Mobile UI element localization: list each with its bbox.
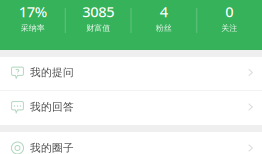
staticText: 我的圈子	[30, 141, 74, 154]
staticText: 0	[225, 2, 233, 21]
button[interactable]: 我的回答	[0, 91, 262, 125]
button[interactable]: 3085	[65, 0, 131, 50]
staticText: 17%	[19, 2, 47, 21]
button[interactable]: 0	[196, 0, 262, 50]
staticText: 我的回答	[30, 100, 74, 113]
button[interactable]: 4	[131, 0, 196, 50]
staticText: 采纳率	[21, 23, 45, 33]
staticText: 财富值	[86, 23, 110, 33]
staticText: 3085	[82, 2, 114, 21]
staticText: 4	[160, 2, 168, 21]
staticText: 粉丝	[156, 23, 172, 33]
button[interactable]: 我的圈子	[0, 132, 262, 154]
button[interactable]: 我的提问	[0, 57, 262, 90]
button[interactable]: 17%	[0, 0, 65, 50]
staticText: 关注	[221, 23, 237, 33]
staticText: 我的提问	[30, 66, 74, 79]
